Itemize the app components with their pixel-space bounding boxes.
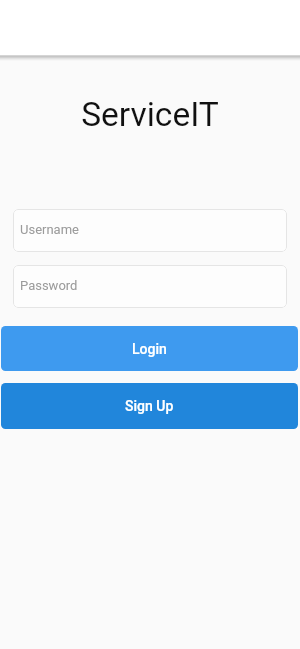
button[interactable]: Username <box>13 209 287 252</box>
staticText: Username <box>20 222 79 237</box>
button[interactable]: Login <box>1 326 298 371</box>
button[interactable]: Password <box>13 265 287 308</box>
staticText: Password <box>20 278 78 293</box>
staticText: Login <box>132 341 167 357</box>
button[interactable]: Sign Up <box>1 383 298 429</box>
staticText: ServiceIT <box>0 95 300 134</box>
staticText: Sign Up <box>125 398 174 414</box>
